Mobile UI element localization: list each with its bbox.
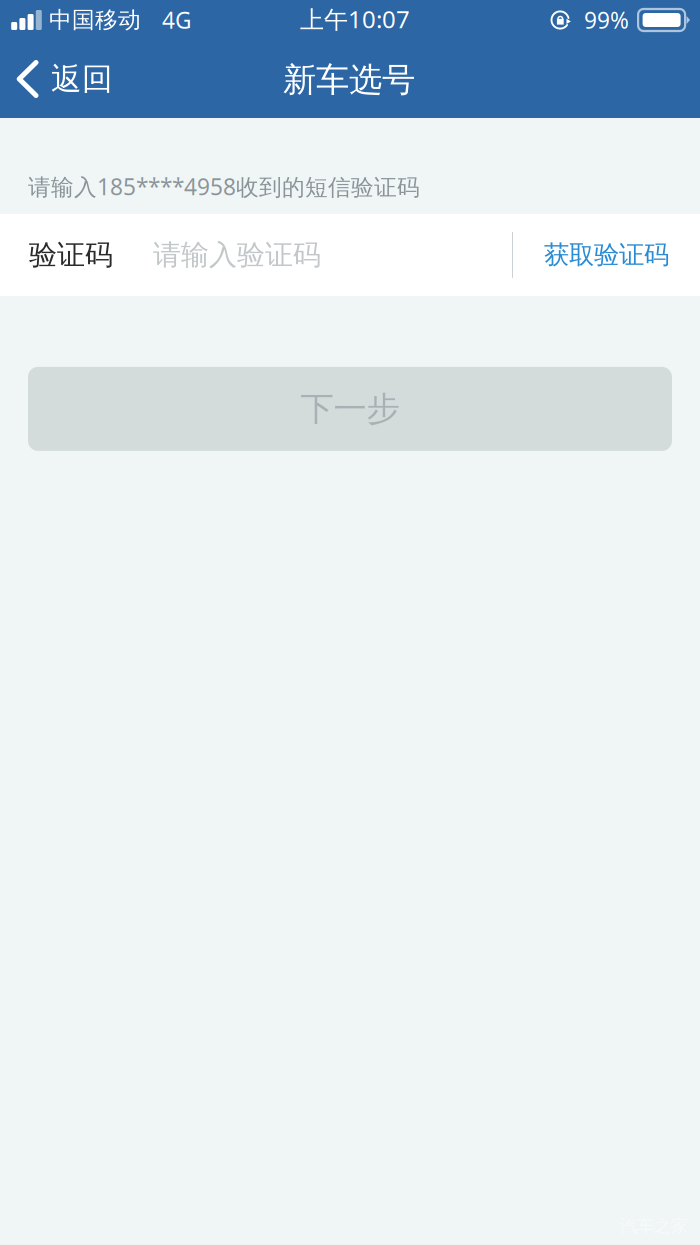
- staticText: 请输入验证码: [153, 237, 321, 272]
- staticText: 中国移动: [49, 6, 141, 34]
- staticText: 新车选号: [283, 59, 415, 101]
- staticText: 下一步: [300, 388, 399, 430]
- button[interactable]: 返回: [0, 40, 135, 118]
- staticText: 验证码: [29, 237, 113, 272]
- staticText: 4G: [162, 5, 192, 35]
- staticText: 99%: [584, 5, 629, 35]
- staticText: 上午10:07: [300, 3, 410, 35]
- button[interactable]: 获取验证码: [513, 214, 700, 296]
- staticText: 获取验证码: [544, 239, 669, 271]
- button[interactable]: 请输入验证码: [113, 214, 485, 296]
- staticText: 请输入185****4958收到的短信验证码: [28, 171, 420, 202]
- button[interactable]: 下一步: [28, 367, 672, 451]
- staticText: 返回: [51, 60, 113, 98]
